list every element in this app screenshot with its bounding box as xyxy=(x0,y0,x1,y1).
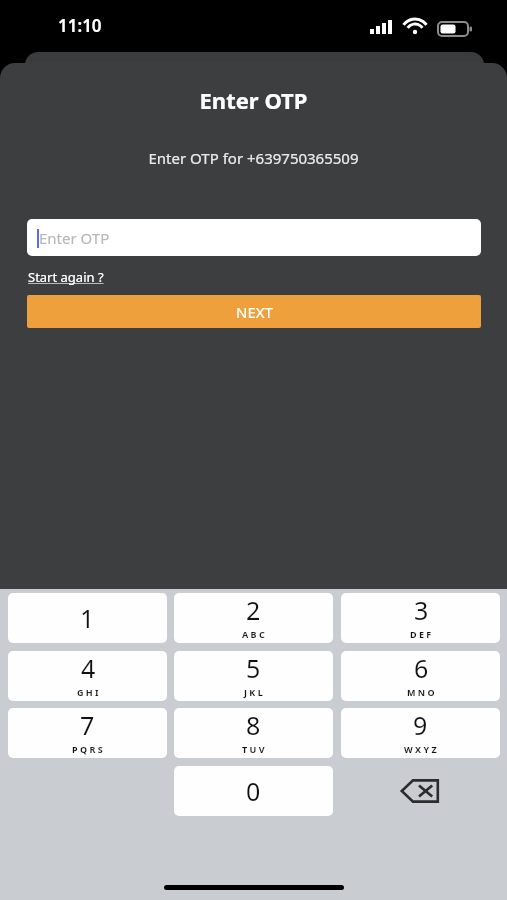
button[interactable]: 8 xyxy=(174,708,333,758)
button[interactable]: 2 xyxy=(174,593,333,643)
staticText: G H I xyxy=(77,686,99,698)
button[interactable]: 5 xyxy=(174,651,333,701)
staticText: J K L xyxy=(244,686,263,698)
button[interactable]: 7 xyxy=(8,708,167,758)
staticText: 6 xyxy=(414,651,429,685)
staticText: D E F xyxy=(410,628,432,640)
staticText: T U V xyxy=(242,743,265,755)
button[interactable]: 6 xyxy=(341,651,500,701)
staticText: P Q R S xyxy=(72,743,103,755)
button[interactable]: 3 xyxy=(341,593,500,643)
staticText: NEXT xyxy=(236,302,273,322)
button[interactable]: Start again ? xyxy=(27,266,105,288)
button[interactable]: 0 xyxy=(174,766,333,816)
button[interactable]: 1 xyxy=(8,593,167,643)
staticText: Start again ? xyxy=(28,268,104,286)
staticText: 7 xyxy=(80,708,95,742)
button[interactable]: Enter OTP xyxy=(27,219,481,256)
staticText: Enter OTP for +639750365509 xyxy=(0,148,507,168)
button[interactable]: 9 xyxy=(341,708,500,758)
staticText: W X Y Z xyxy=(404,743,437,755)
staticText: 4 xyxy=(81,651,96,685)
button[interactable]: Backspace xyxy=(341,766,500,816)
staticText: 9 xyxy=(413,708,428,742)
staticText: 3 xyxy=(414,593,429,627)
staticText: 5 xyxy=(246,651,261,685)
staticText: Enter OTP xyxy=(39,228,110,248)
staticText: 8 xyxy=(246,708,261,742)
staticText: Enter OTP xyxy=(0,85,507,115)
button[interactable]: 4 xyxy=(8,651,167,701)
staticText: 1 xyxy=(80,601,95,635)
staticText: 0 xyxy=(246,774,261,808)
staticText: A B C xyxy=(242,628,265,640)
staticText: 2 xyxy=(246,593,261,627)
staticText: M N O xyxy=(407,686,435,698)
button[interactable]: NEXT xyxy=(27,295,481,328)
staticText: 11:10 xyxy=(58,14,102,37)
